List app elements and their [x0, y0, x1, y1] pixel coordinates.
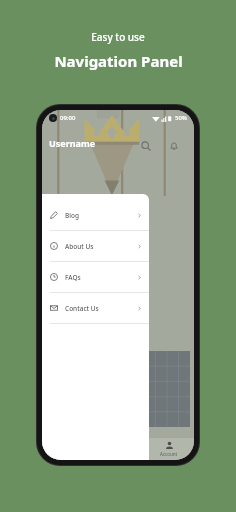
- button[interactable]: Notifications: [164, 136, 184, 156]
- button[interactable]: Search: [136, 136, 156, 156]
- staticText: Navigation Panel: [54, 51, 183, 71]
- button[interactable]: Blog: [42, 200, 149, 231]
- staticText: Blog: [65, 211, 80, 220]
- button[interactable]: FAQs: [42, 262, 149, 293]
- button[interactable]: [144, 351, 190, 427]
- staticText: FAQs: [65, 273, 81, 282]
- staticText: About Us: [65, 242, 94, 251]
- button[interactable]: Contact Us: [42, 293, 149, 324]
- button[interactable]: About Us: [42, 231, 149, 262]
- button[interactable]: Account: [160, 441, 178, 457]
- staticText: Username: [49, 137, 96, 149]
- staticText: Contact Us: [65, 304, 99, 313]
- staticText: Account: [160, 451, 178, 457]
- staticText: Easy to use: [91, 30, 145, 44]
- staticText: 50%: [175, 114, 187, 122]
- staticText: 09:00: [60, 114, 76, 122]
